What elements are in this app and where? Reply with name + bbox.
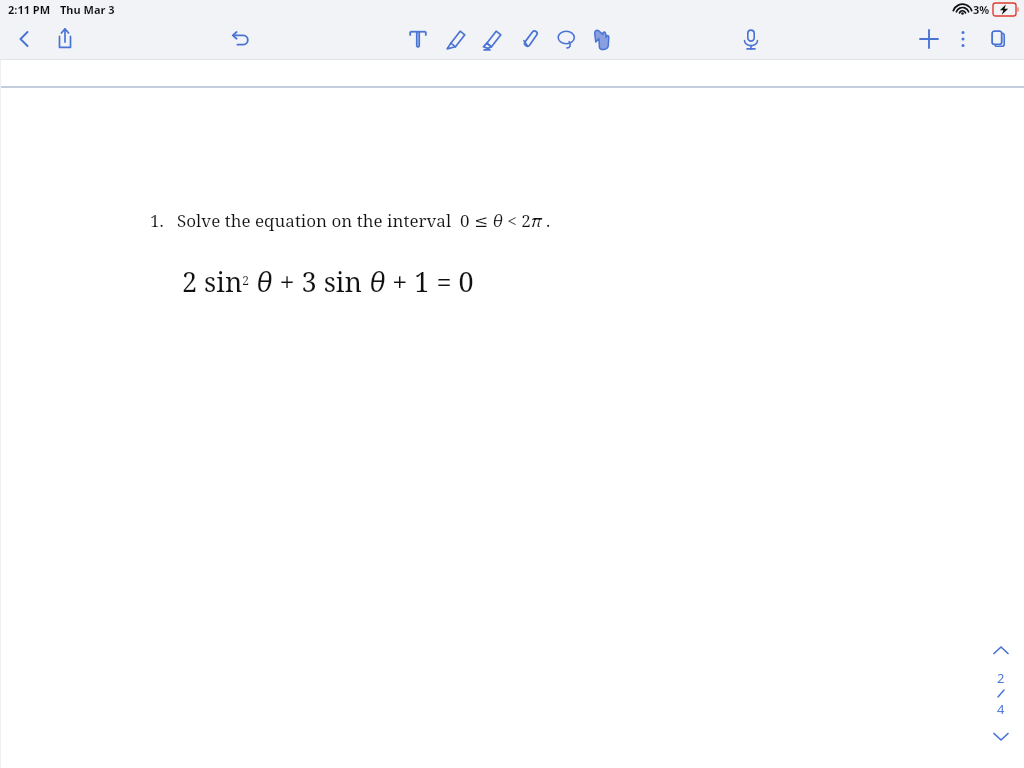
button[interactable]: More options	[949, 25, 977, 53]
staticText: 2:11 PM	[8, 2, 51, 17]
staticText: 2	[997, 669, 1005, 687]
button[interactable]: Hand tool	[587, 25, 615, 53]
button[interactable]: Text tool	[404, 25, 432, 53]
button[interactable]: Eraser	[515, 25, 543, 53]
staticText: 1. Solve the equation on the interval 0 …	[150, 209, 551, 232]
button[interactable]: Add	[915, 25, 943, 53]
button[interactable]: Undo	[226, 25, 254, 53]
button[interactable]: Lasso	[552, 25, 580, 53]
button[interactable]: Pen	[442, 25, 470, 53]
staticText: 2 sin2 θ + 3 sin θ + 1 = 0	[182, 263, 474, 300]
staticText: 4	[997, 700, 1005, 718]
button[interactable]: Back	[10, 25, 38, 53]
button[interactable]: Highlighter	[478, 25, 506, 53]
button[interactable]: Pages	[985, 25, 1013, 53]
button[interactable]: Next page	[988, 726, 1014, 748]
button[interactable]: Record audio	[737, 25, 765, 53]
button[interactable]: Share	[51, 25, 79, 53]
staticText: Thu Mar 3	[60, 2, 115, 17]
button[interactable]: Previous page	[988, 639, 1014, 661]
staticText: 3%	[973, 2, 990, 17]
